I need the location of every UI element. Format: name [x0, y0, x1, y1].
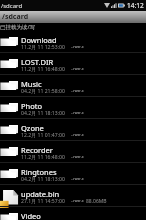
staticText: /sdcard — [1, 2, 23, 10]
staticText: 12.2月 11 01:47:00 — [21, 132, 65, 139]
staticText: --rwxr-x — [71, 110, 84, 115]
button[interactable]: LOST.DIR — [0, 53, 146, 75]
staticText: Download — [21, 35, 57, 45]
staticText: Ringtones — [21, 167, 57, 177]
staticText: 27.1月 11 14:57:00 — [21, 198, 65, 205]
button[interactable]: Ringtones — [0, 163, 146, 185]
staticText: Music — [21, 79, 42, 89]
staticText: 已挂载为读/写 — [0, 23, 36, 31]
staticText: --rwxr-x — [71, 198, 84, 203]
staticText: 11.2月 11 16:48:00 — [21, 66, 65, 73]
staticText: /sdcard — [2, 12, 29, 22]
staticText: Recorder — [21, 145, 53, 155]
staticText: --rwxr-x — [71, 132, 84, 137]
button[interactable]: Recorder — [0, 141, 146, 163]
staticText: --rwxr-x — [71, 154, 84, 159]
staticText: --rwxr-x — [71, 176, 84, 181]
staticText: 04.2月 11 18:13:00 — [21, 110, 65, 117]
button[interactable]: Photo — [0, 97, 146, 119]
staticText: LOST.DIR — [21, 57, 54, 67]
staticText: Video — [21, 211, 41, 220]
staticText: 11.2月 11 16:48:00 — [21, 154, 65, 161]
staticText: 04.2月 11 18:13:00 — [21, 176, 65, 183]
button[interactable]: Video — [0, 207, 146, 220]
staticText: 14:12 — [127, 1, 144, 10]
button[interactable]: Music — [0, 75, 146, 97]
staticText: --rwxr-x — [71, 44, 84, 49]
button[interactable]: Qzone — [0, 119, 146, 141]
button[interactable]: Download — [0, 31, 146, 53]
staticText: Qzone — [21, 123, 44, 133]
staticText: Photo — [21, 101, 42, 111]
staticText: --rwxr-x — [71, 88, 84, 93]
staticText: update.bin — [21, 189, 60, 199]
staticText: 04.2月 11 21:58:00 — [21, 88, 65, 95]
staticText: 11.2月 11 12:53:00 — [21, 44, 65, 51]
button[interactable]: update.bin — [0, 185, 146, 207]
staticText: --rwxr-x — [71, 66, 84, 71]
staticText: 88.06MB — [86, 198, 107, 205]
